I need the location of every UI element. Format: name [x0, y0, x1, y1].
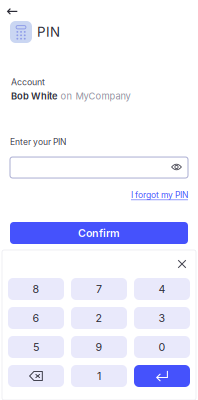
button[interactable]: 5 — [8, 336, 64, 358]
button[interactable]: I forgot my PIN — [131, 190, 188, 200]
staticText: 7 — [96, 282, 102, 295]
staticText: 9 — [95, 340, 102, 353]
staticText: 8 — [32, 282, 39, 295]
staticText: Account — [11, 77, 45, 87]
button[interactable]: Delete — [8, 365, 64, 387]
staticText: on MyCompany — [61, 90, 131, 102]
staticText: 1 — [97, 369, 101, 382]
button[interactable]: Enter — [134, 365, 190, 387]
button[interactable]: 7 — [71, 278, 127, 300]
button[interactable]: 9 — [71, 336, 127, 358]
staticText: 0 — [158, 340, 165, 353]
staticText: Bob White — [11, 90, 58, 102]
staticText: 2 — [95, 311, 102, 324]
staticText: PIN — [37, 24, 60, 40]
button[interactable]: 2 — [71, 307, 127, 329]
staticText: 3 — [158, 311, 165, 324]
button[interactable]: 4 — [134, 278, 190, 300]
staticText: 4 — [158, 282, 165, 295]
button[interactable]: Confirm — [10, 222, 188, 244]
button[interactable]: 1 — [71, 365, 127, 387]
button[interactable]: 3 — [134, 307, 190, 329]
staticText: Confirm — [78, 226, 120, 239]
button[interactable]: Close keypad — [172, 254, 192, 274]
staticText: 5 — [33, 340, 39, 353]
staticText: I forgot my PIN — [131, 190, 188, 200]
button[interactable]: 0 — [134, 336, 190, 358]
button[interactable]: Back — [1, 3, 24, 20]
button[interactable]: 6 — [8, 307, 64, 329]
staticText: Enter your PIN — [10, 137, 66, 147]
staticText: 6 — [32, 311, 39, 324]
button[interactable]: 8 — [8, 278, 64, 300]
